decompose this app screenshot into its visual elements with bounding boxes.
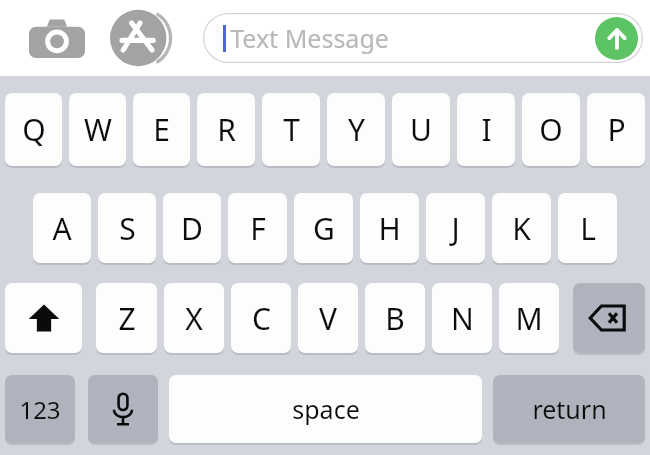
staticText: J [451,208,460,249]
staticText: Z [118,298,136,339]
button[interactable]: H [360,193,419,263]
button[interactable]: B [365,283,425,353]
staticText: C [252,298,271,339]
button[interactable]: Q [5,93,62,166]
staticText: K [512,208,531,249]
staticText: G [313,208,335,249]
button[interactable]: C [231,283,291,353]
button[interactable]: E [133,93,190,166]
button[interactable]: M [499,283,559,353]
staticText: I [481,109,492,150]
button[interactable]: X [164,283,224,353]
staticText: T [283,109,300,150]
button[interactable]: N [432,283,492,353]
button[interactable]: V [298,283,358,353]
button[interactable]: S [98,193,156,263]
staticText: V [319,298,337,339]
staticText: F [250,208,266,249]
staticText: E [153,109,170,150]
staticText: B [385,298,405,339]
button[interactable]: App Store [108,6,172,70]
staticText: M [515,298,543,339]
button[interactable]: W [69,93,126,166]
button[interactable]: return [493,375,645,443]
staticText: Y [348,109,365,150]
button[interactable]: space [169,375,482,443]
staticText: H [378,208,401,249]
staticText: D [181,208,203,249]
staticText: return [532,392,607,426]
button[interactable]: A [33,193,91,263]
button[interactable]: L [558,193,617,263]
staticText: W [84,109,112,150]
staticText: A [52,208,72,249]
button[interactable]: J [426,193,485,263]
button[interactable]: T [262,93,320,166]
button[interactable]: I [457,93,515,166]
button[interactable]: Shift [5,283,82,353]
button[interactable]: Camera [26,13,88,63]
staticText: space [292,392,360,426]
button[interactable]: Delete [573,283,645,353]
button[interactable]: G [294,193,353,263]
staticText: S [119,208,136,249]
button[interactable]: K [492,193,551,263]
button[interactable]: U [392,93,450,166]
button[interactable]: P [587,93,645,166]
staticText: U [410,109,432,150]
staticText: R [217,109,236,150]
staticText: X [185,298,203,339]
button[interactable]: Dictation [88,375,158,443]
staticText: O [539,109,563,150]
button[interactable]: F [228,193,287,263]
button[interactable]: O [522,93,580,166]
button[interactable]: Z [96,283,157,353]
button[interactable]: Y [327,93,385,166]
button[interactable]: D [163,193,221,263]
staticText: L [580,208,596,249]
button[interactable]: Send [595,17,638,60]
button[interactable]: 123 [5,375,75,443]
staticText: P [607,109,626,150]
staticText: 123 [19,393,61,426]
button[interactable]: R [197,93,255,166]
staticText: Text Message [230,21,389,55]
button[interactable]: Text Message [203,13,643,63]
staticText: N [451,298,474,339]
staticText: Q [22,109,46,150]
